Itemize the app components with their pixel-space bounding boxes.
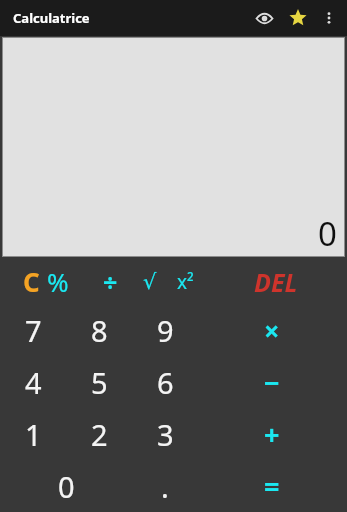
button[interactable]: ÷: [88, 259, 132, 304]
staticText: 8: [91, 311, 108, 350]
staticText: DEL: [254, 265, 298, 299]
button[interactable]: 4: [0, 356, 66, 408]
staticText: √: [143, 270, 157, 294]
staticText: 3: [157, 415, 174, 454]
staticText: 9: [157, 311, 174, 350]
button[interactable]: =: [246, 460, 298, 512]
button[interactable]: C: [12, 259, 50, 304]
staticText: 7: [25, 311, 42, 350]
staticText: 4: [25, 363, 42, 402]
staticText: %: [47, 264, 69, 299]
staticText: 5: [91, 363, 108, 402]
staticText: +: [264, 416, 280, 453]
staticText: C: [23, 264, 40, 299]
button[interactable]: DEL: [235, 258, 317, 305]
button[interactable]: 0: [0, 460, 132, 512]
staticText: Calculatrice: [13, 9, 90, 27]
button[interactable]: 1: [0, 408, 66, 460]
button[interactable]: 6: [132, 356, 198, 408]
staticText: 0: [58, 467, 75, 506]
button[interactable]: .: [132, 460, 198, 512]
staticText: =: [264, 468, 280, 505]
button[interactable]: 3: [132, 408, 198, 460]
button[interactable]: 0: [3, 38, 344, 256]
button[interactable]: Favorite: [281, 1, 315, 35]
button[interactable]: 2: [66, 408, 132, 460]
button[interactable]: 7: [0, 305, 66, 356]
button[interactable]: x²: [165, 259, 205, 304]
button[interactable]: −: [246, 356, 298, 408]
button[interactable]: +: [246, 408, 298, 460]
button[interactable]: 8: [66, 305, 132, 356]
staticText: x²: [177, 269, 194, 295]
staticText: 2: [91, 415, 108, 454]
staticText: 1: [25, 415, 42, 454]
staticText: .: [161, 467, 169, 506]
staticText: −: [264, 364, 280, 401]
button[interactable]: %: [39, 259, 77, 304]
button[interactable]: Preview: [247, 1, 281, 35]
staticText: 0: [318, 211, 337, 256]
button[interactable]: 5: [66, 356, 132, 408]
staticText: 6: [157, 363, 174, 402]
staticText: ÷: [103, 265, 118, 299]
button[interactable]: √: [131, 259, 169, 304]
button[interactable]: 9: [132, 305, 198, 356]
button[interactable]: ×: [246, 305, 298, 356]
staticText: ×: [264, 312, 280, 349]
button[interactable]: More options: [315, 4, 343, 32]
